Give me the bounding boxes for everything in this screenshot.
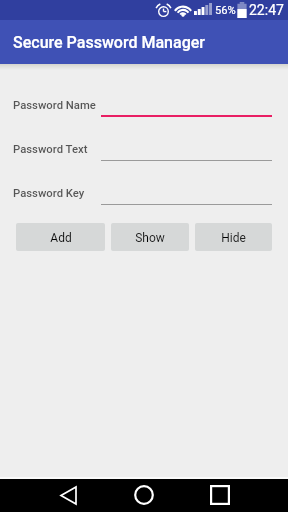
- button[interactable]: Recent apps: [196, 478, 244, 512]
- staticText: Hide: [221, 231, 246, 245]
- button[interactable]: [101, 182, 272, 205]
- staticText: Password Key: [13, 187, 85, 200]
- staticText: 56%: [215, 4, 236, 17]
- button[interactable]: Home: [120, 478, 168, 512]
- staticText: 22:47: [249, 2, 284, 18]
- staticText: Password Name: [13, 99, 96, 112]
- button[interactable]: Add: [16, 223, 105, 251]
- button[interactable]: [101, 138, 272, 161]
- button[interactable]: Hide: [195, 223, 272, 251]
- staticText: Add: [50, 231, 72, 245]
- button[interactable]: [101, 94, 272, 117]
- staticText: Password Text: [13, 143, 88, 156]
- button[interactable]: Show: [111, 223, 189, 251]
- staticText: Secure Password Manager: [13, 33, 205, 52]
- button[interactable]: Back: [44, 478, 92, 512]
- staticText: Show: [135, 231, 165, 245]
